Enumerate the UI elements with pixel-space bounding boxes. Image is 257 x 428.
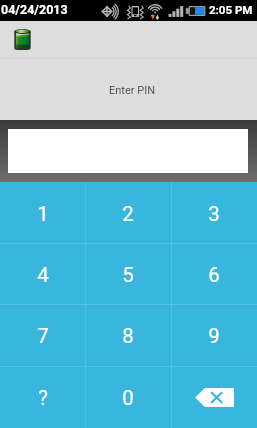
button[interactable]: 2: [85, 182, 171, 243]
staticText: 2:05 PM: [209, 3, 253, 16]
staticText: 0: [122, 386, 134, 410]
button[interactable]: Backspace: [171, 366, 257, 428]
staticText: 1: [37, 202, 49, 226]
button[interactable]: 8: [85, 304, 171, 366]
button[interactable]: 5: [85, 243, 171, 304]
staticText: 7: [37, 324, 49, 348]
staticText: ?: [38, 386, 48, 410]
button[interactable]: 1: [0, 182, 85, 243]
button[interactable]: 4: [0, 243, 85, 304]
staticText: 04/24/2013: [1, 2, 68, 17]
other: Status icons: [96, 3, 207, 19]
staticText: 6: [208, 263, 220, 287]
staticText: 4: [37, 263, 49, 287]
button[interactable]: 0: [85, 366, 171, 428]
staticText: Enter PIN: [109, 84, 155, 97]
button[interactable]: App icon, up: [14, 29, 31, 50]
staticText: 3: [208, 202, 220, 226]
button[interactable]: 6: [171, 243, 257, 304]
button[interactable]: 9: [171, 304, 257, 366]
button[interactable]: ?: [0, 366, 85, 428]
staticText: 5: [122, 263, 134, 287]
button[interactable]: 7: [0, 304, 85, 366]
staticText: 8: [122, 324, 134, 348]
staticText: 9: [208, 324, 220, 348]
staticText: 2: [122, 202, 134, 226]
button[interactable]: 3: [171, 182, 257, 243]
